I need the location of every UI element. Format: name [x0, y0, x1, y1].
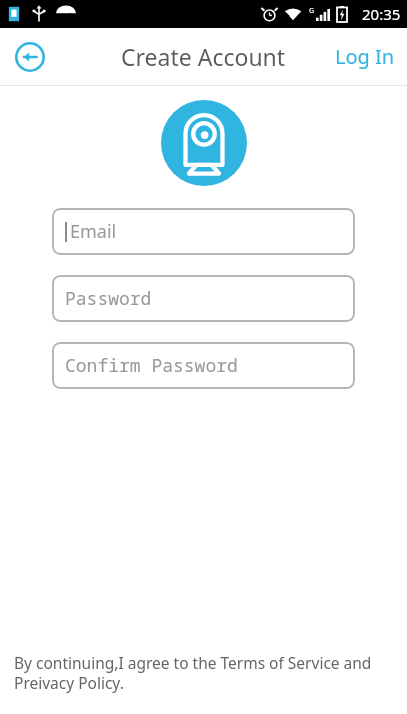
staticText: Email	[70, 219, 117, 244]
other: App logo	[161, 100, 247, 186]
staticText: 20:35	[362, 4, 401, 24]
button[interactable]: Back	[8, 35, 52, 79]
staticText: By continuing,I agree to the Terms of Se…	[14, 652, 393, 694]
staticText: Create Account	[121, 41, 286, 72]
staticText: Confirm Password	[65, 353, 238, 378]
button[interactable]: Log In	[323, 33, 407, 80]
button[interactable]: Email	[52, 208, 355, 255]
button[interactable]: Password	[52, 275, 355, 322]
button[interactable]: Confirm Password	[52, 342, 355, 389]
staticText: G	[309, 6, 315, 16]
staticText: Log In	[335, 43, 395, 70]
staticText: Password	[65, 286, 152, 311]
